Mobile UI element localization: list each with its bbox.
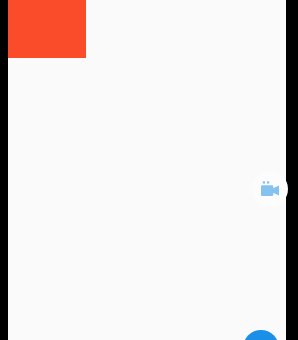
button[interactable]: Record video <box>252 171 288 207</box>
button[interactable]: Create <box>243 330 279 340</box>
